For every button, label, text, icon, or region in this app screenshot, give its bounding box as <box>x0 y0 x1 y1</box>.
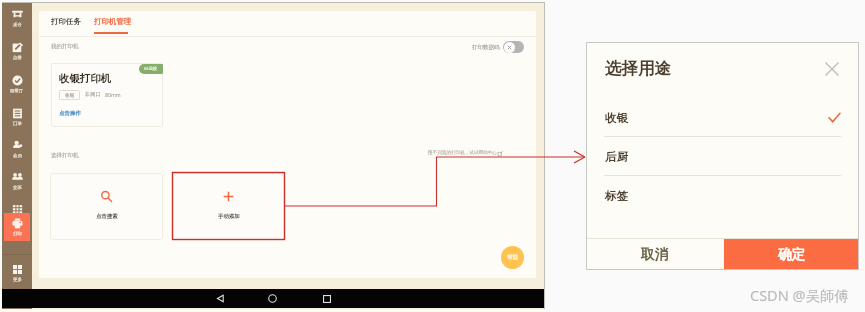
button[interactable]: 打印 <box>4 213 30 241</box>
button[interactable]: 搜不到我的打印机，试试帮助中心 <box>428 150 503 156</box>
button[interactable]: 连通 <box>4 199 30 227</box>
staticText: 标签 <box>605 189 628 203</box>
button[interactable]: 点餐 <box>4 37 30 65</box>
button[interactable]: 点击操作 <box>58 109 82 118</box>
staticText: 打印数据码 <box>472 44 500 51</box>
staticText: 非网口 <box>85 91 101 98</box>
button[interactable]: Recents <box>313 289 341 308</box>
staticText: 连通 <box>13 217 22 223</box>
button[interactable]: 标签 <box>604 176 841 215</box>
staticText: 交班 <box>13 185 22 191</box>
staticText: 帮助 <box>507 254 519 261</box>
button[interactable]: 手动添加 <box>172 173 285 240</box>
button[interactable]: 打印任务 <box>48 14 84 29</box>
button[interactable]: Back <box>206 289 234 308</box>
staticText: 会员 <box>13 153 22 159</box>
staticText: 已连接 <box>144 66 158 72</box>
staticText: 收银 <box>65 92 75 98</box>
button[interactable]: 收银打印机 <box>51 63 163 127</box>
staticText: 我的打印机 <box>51 43 79 50</box>
staticText: 选择用途 <box>605 58 671 79</box>
staticText: 搜不到我的打印机，试试帮助中心 <box>428 150 497 156</box>
button[interactable]: Close <box>823 60 841 78</box>
staticText: 打印 <box>13 231 22 237</box>
staticText: CSDN @吴師傅 <box>750 285 850 305</box>
staticText: 桌台 <box>13 22 22 28</box>
staticText: 打印机管理 <box>94 17 131 26</box>
button[interactable]: 交班 <box>4 167 30 195</box>
staticText: 点餐 <box>13 55 22 61</box>
button[interactable]: 订单 <box>4 103 30 131</box>
button[interactable]: 确定 <box>724 239 859 270</box>
button[interactable]: 收银 <box>604 98 841 137</box>
staticText: 打印任务 <box>51 17 81 26</box>
button[interactable]: 点击搜索 <box>50 173 163 240</box>
button[interactable]: 会员 <box>4 135 30 163</box>
button[interactable]: Home <box>258 289 286 308</box>
staticText: 点击搜索 <box>96 213 118 220</box>
button[interactable]: 更多 <box>4 259 30 287</box>
button[interactable]: 取消 <box>586 239 724 270</box>
staticText: 取消 <box>641 246 669 263</box>
button[interactable]: 打印数据码 <box>472 41 524 53</box>
staticText: 确定 <box>778 246 806 263</box>
button[interactable]: 帮助 <box>501 246 524 269</box>
button[interactable]: 微餐厅 <box>4 70 30 98</box>
staticText: 手动添加 <box>218 213 240 220</box>
staticText: 订单 <box>13 121 22 127</box>
staticText: 点击操作 <box>59 110 81 117</box>
button[interactable]: 桌台 <box>4 4 30 32</box>
staticText: 80mm <box>105 91 121 98</box>
button[interactable]: 后厨 <box>604 137 841 176</box>
staticText: 收银打印机 <box>59 72 111 85</box>
staticText: 收银 <box>605 111 628 125</box>
staticText: 微餐厅 <box>10 88 24 94</box>
staticText: 更多 <box>13 277 22 283</box>
button[interactable]: 打印机管理 <box>91 14 134 29</box>
staticText: 选择打印机 <box>51 152 79 159</box>
staticText: 后厨 <box>605 150 628 164</box>
